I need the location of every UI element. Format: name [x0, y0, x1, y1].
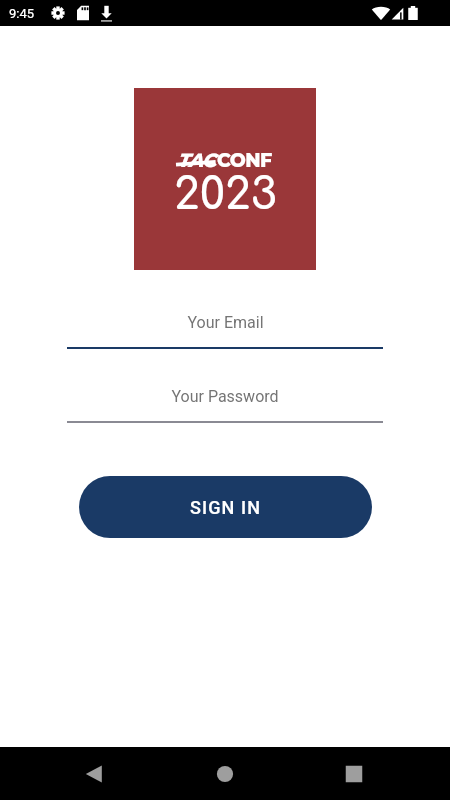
- button[interactable]: Home: [201, 750, 249, 798]
- button[interactable]: Recent apps: [330, 750, 378, 798]
- staticText: TAC: [178, 149, 217, 172]
- staticText: SIGN IN: [190, 497, 262, 518]
- button[interactable]: SIGN IN: [79, 476, 372, 538]
- staticText: 2023: [174, 170, 277, 219]
- button[interactable]: Your Email: [67, 313, 383, 349]
- staticText: 9:45: [9, 6, 35, 21]
- staticText: CONF: [217, 149, 272, 172]
- staticText: Your Email: [187, 313, 264, 332]
- staticText: Your Password: [171, 387, 279, 406]
- button[interactable]: Your Password: [67, 387, 383, 423]
- button[interactable]: Back: [70, 750, 118, 798]
